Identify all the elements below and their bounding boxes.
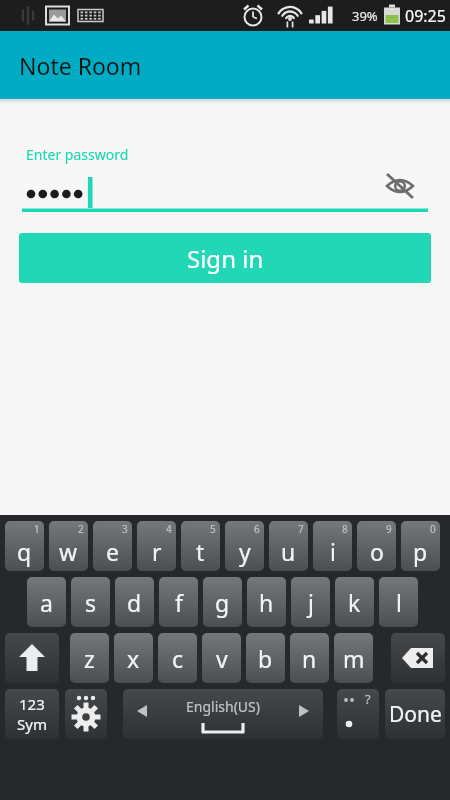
button[interactable]: z	[70, 633, 109, 683]
staticText: g	[215, 587, 230, 618]
button[interactable]: c	[158, 633, 197, 683]
button[interactable]: h	[247, 577, 286, 627]
staticText: y	[239, 536, 251, 567]
staticText: f	[175, 587, 183, 618]
button[interactable]: Symbols	[5, 689, 59, 739]
button[interactable]: b	[246, 633, 285, 683]
button[interactable]: 8	[313, 521, 352, 571]
button[interactable]: Done	[385, 689, 445, 739]
staticText: ?	[365, 690, 371, 708]
staticText: a	[40, 587, 53, 618]
button[interactable]: Backspace	[391, 633, 445, 683]
button[interactable]: v	[202, 633, 241, 683]
staticText: i	[330, 536, 336, 567]
button[interactable]: Space	[123, 689, 323, 739]
staticText: 3	[122, 522, 128, 536]
staticText: Enter password	[26, 145, 129, 164]
staticText: English(US)	[186, 697, 260, 716]
staticText: 4	[166, 522, 172, 536]
button[interactable]: Keyboard settings	[65, 689, 107, 739]
button[interactable]: a	[27, 577, 66, 627]
staticText: o	[370, 536, 384, 567]
button[interactable]: x	[114, 633, 153, 683]
staticText: 5	[210, 522, 216, 536]
staticText: r	[152, 536, 162, 567]
staticText: x	[127, 643, 140, 674]
staticText: k	[348, 587, 361, 618]
button[interactable]: f	[159, 577, 198, 627]
staticText: w	[59, 536, 78, 567]
button[interactable]: Period	[337, 689, 379, 739]
staticText: m	[343, 643, 365, 674]
staticText: h	[259, 587, 274, 618]
staticText: n	[302, 643, 317, 674]
button[interactable]: 0	[401, 521, 440, 571]
button[interactable]: l	[379, 577, 418, 627]
staticText: 9	[386, 522, 392, 536]
staticText: 7	[298, 522, 304, 536]
button[interactable]: d	[115, 577, 154, 627]
button[interactable]: 4	[137, 521, 176, 571]
staticText: Sym	[17, 714, 47, 734]
staticText: t	[196, 536, 205, 567]
button[interactable]: s	[71, 577, 110, 627]
staticText: l	[396, 587, 402, 618]
staticText: 39%	[352, 7, 378, 25]
button[interactable]: 2	[49, 521, 88, 571]
staticText: u	[281, 536, 296, 567]
button[interactable]: 9	[357, 521, 396, 571]
staticText: Sign in	[187, 242, 264, 275]
staticText: j	[308, 587, 314, 618]
button[interactable]: 7	[269, 521, 308, 571]
button[interactable]: g	[203, 577, 242, 627]
button[interactable]: Sign in	[19, 233, 431, 283]
button[interactable]: 5	[181, 521, 220, 571]
button[interactable]	[22, 166, 428, 212]
button[interactable]: Toggle password visibility	[378, 166, 422, 210]
staticText: 2	[78, 522, 84, 536]
button[interactable]: n	[290, 633, 329, 683]
staticText: c	[172, 643, 184, 674]
staticText: v	[216, 643, 228, 674]
staticText: z	[84, 643, 95, 674]
staticText: e	[106, 536, 119, 567]
staticText: Note Room	[19, 50, 142, 81]
button[interactable]: k	[335, 577, 374, 627]
button[interactable]: 1	[5, 521, 44, 571]
staticText: 09:25	[405, 5, 446, 27]
staticText: 123	[19, 694, 45, 714]
button[interactable]: 6	[225, 521, 264, 571]
staticText: Done	[389, 700, 442, 729]
button[interactable]: 3	[93, 521, 132, 571]
staticText: 8	[342, 522, 348, 536]
button[interactable]: Shift	[5, 633, 59, 683]
staticText: s	[85, 587, 97, 618]
button[interactable]: m	[334, 633, 373, 683]
staticText: p	[413, 536, 428, 567]
staticText: d	[127, 587, 142, 618]
staticText: q	[17, 536, 32, 567]
staticText: 6	[254, 522, 260, 536]
staticText: 0	[430, 522, 436, 536]
staticText: 1	[34, 522, 40, 536]
button[interactable]: j	[291, 577, 330, 627]
staticText: b	[258, 643, 273, 674]
